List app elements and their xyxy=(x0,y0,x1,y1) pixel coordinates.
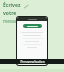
staticText: message xyxy=(3,18,22,24)
staticText: votre xyxy=(3,10,17,17)
staticText: Personnalisation xyxy=(20,60,45,64)
button[interactable]: Valider xyxy=(17,17,47,65)
staticText: Écrivez xyxy=(3,2,21,9)
button[interactable]: Personnalisation xyxy=(0,59,64,64)
button[interactable]: Écrivez xyxy=(3,2,61,24)
button[interactable]: Valider xyxy=(23,24,42,28)
